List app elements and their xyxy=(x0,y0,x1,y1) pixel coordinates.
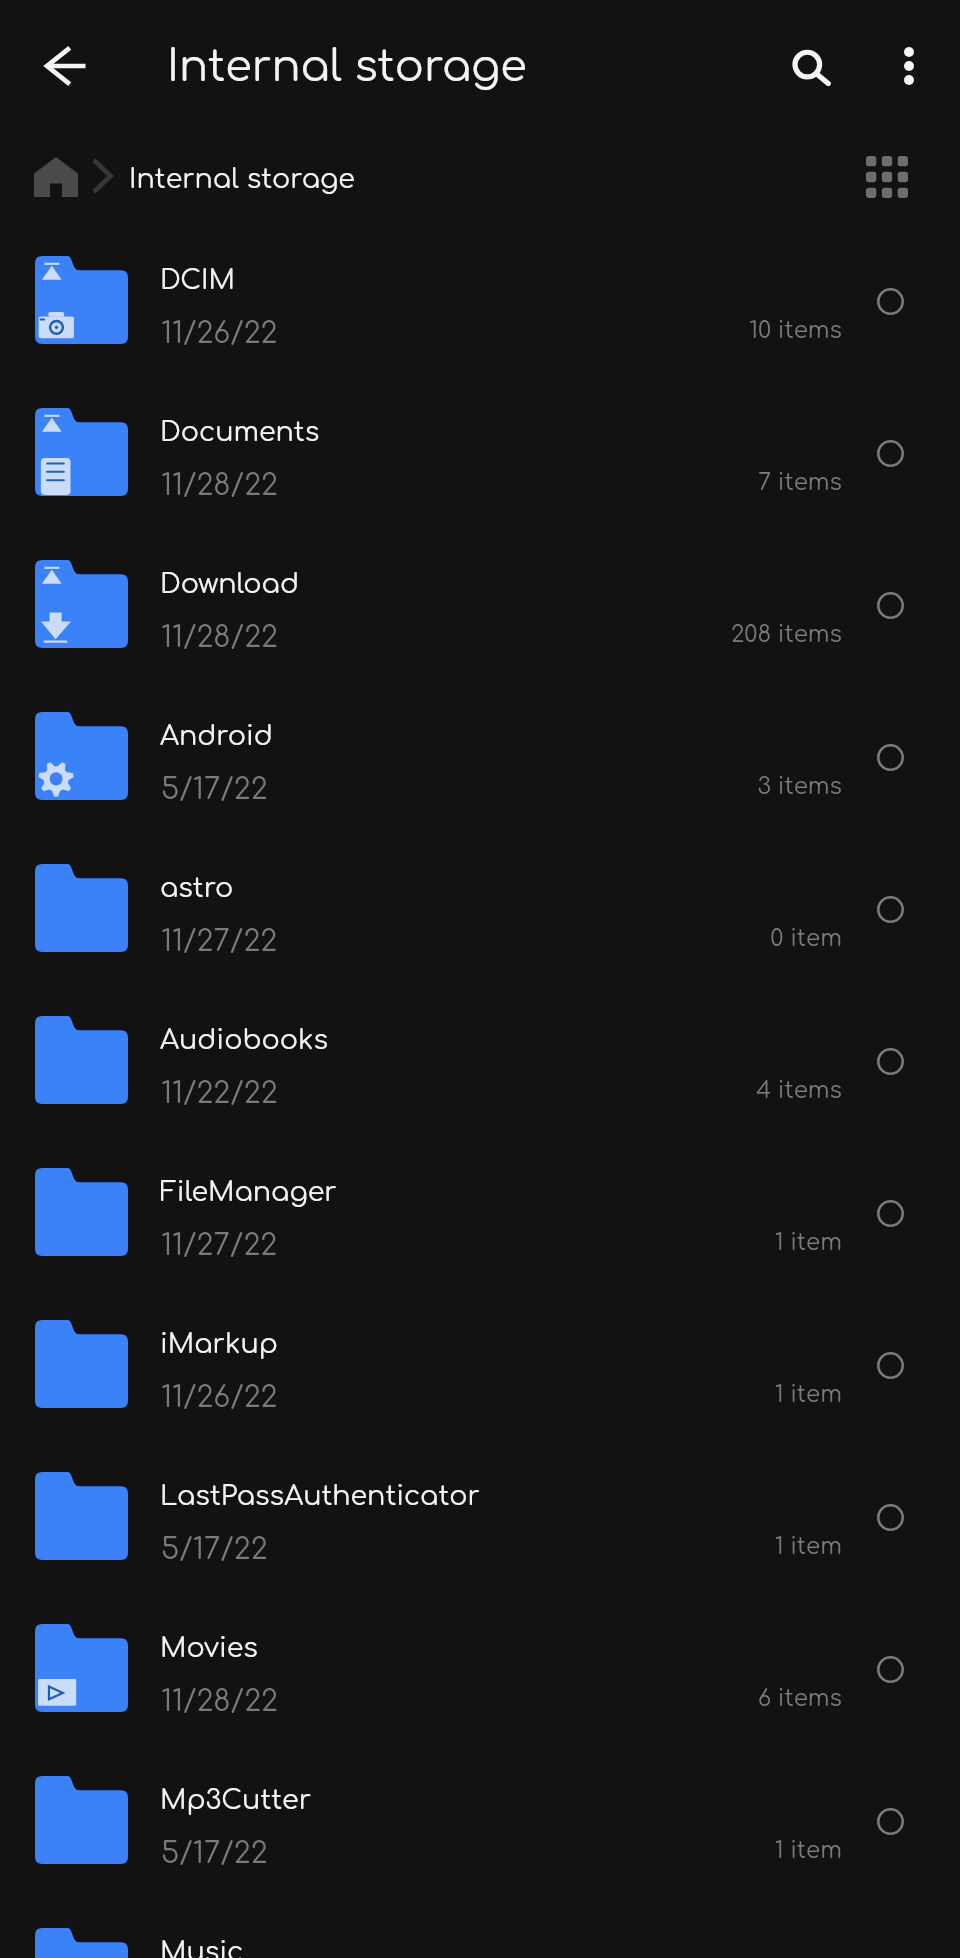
button[interactable]: DCIM xyxy=(0,225,960,377)
button[interactable]: Back xyxy=(22,32,102,100)
staticText: 11/26/22 xyxy=(161,1381,278,1413)
staticText: Audiobooks xyxy=(160,1025,760,1055)
staticText: Mp3Cutter xyxy=(160,1785,760,1815)
staticText: Documents xyxy=(160,417,760,447)
staticText: 11/27/22 xyxy=(161,925,278,957)
button[interactable]: iMarkup xyxy=(0,1289,960,1441)
staticText: Music xyxy=(160,1937,760,1958)
staticText: 5/17/22 xyxy=(161,1533,268,1565)
button[interactable]: Select xyxy=(862,729,918,785)
button[interactable]: Movies xyxy=(0,1593,960,1745)
staticText: Internal storage xyxy=(129,164,355,194)
staticText: 11/27/22 xyxy=(161,1229,278,1261)
button[interactable]: Mp3Cutter xyxy=(0,1745,960,1897)
button[interactable]: Documents xyxy=(0,377,960,529)
staticText: 11/28/22 xyxy=(161,621,278,653)
button[interactable]: Select xyxy=(862,1337,918,1393)
staticText: 11/26/22 xyxy=(161,317,278,349)
staticText: 1 item xyxy=(0,1382,842,1408)
staticText: 0 item xyxy=(0,926,842,952)
button[interactable]: Select xyxy=(862,881,918,937)
staticText: Movies xyxy=(160,1633,760,1663)
staticText: 1 item xyxy=(0,1230,842,1256)
staticText: 3 items xyxy=(0,774,842,800)
staticText: FileManager xyxy=(160,1177,760,1207)
button[interactable]: LastPassAuthenticator xyxy=(0,1441,960,1593)
button[interactable]: Select xyxy=(862,425,918,481)
staticText: Download xyxy=(160,569,760,599)
button[interactable]: FileManager xyxy=(0,1137,960,1289)
button[interactable]: More options xyxy=(871,25,947,107)
staticText: 5/17/22 xyxy=(161,1837,268,1869)
staticText: Android xyxy=(160,721,760,751)
staticText: 4 items xyxy=(0,1078,842,1104)
staticText: 11/28/22 xyxy=(161,1685,278,1717)
staticText: 1 item xyxy=(0,1534,842,1560)
button[interactable]: Select xyxy=(862,1033,918,1089)
staticText: 208 items xyxy=(0,622,842,648)
button[interactable]: Home xyxy=(22,146,90,208)
staticText: 11/28/22 xyxy=(161,469,278,501)
staticText: 6 items xyxy=(0,1686,842,1712)
button[interactable]: Select xyxy=(862,1641,918,1697)
button[interactable]: Search xyxy=(772,25,844,107)
button[interactable]: Music xyxy=(0,1897,960,1958)
staticText: LastPassAuthenticator xyxy=(160,1481,760,1511)
button[interactable]: astro xyxy=(0,833,960,985)
button[interactable]: Select xyxy=(862,1185,918,1241)
button[interactable]: Android xyxy=(0,681,960,833)
button[interactable]: Select xyxy=(862,1489,918,1545)
staticText: 10 items xyxy=(0,318,842,344)
button[interactable]: Select xyxy=(862,577,918,633)
button[interactable]: Select xyxy=(862,273,918,329)
staticText: 1 item xyxy=(0,1838,842,1864)
button[interactable]: Select xyxy=(862,1793,918,1849)
staticText: astro xyxy=(160,873,760,903)
staticText: 5/17/22 xyxy=(161,773,268,805)
button[interactable]: Grid view xyxy=(848,147,926,207)
button[interactable]: Download xyxy=(0,529,960,681)
staticText: DCIM xyxy=(160,265,760,295)
button[interactable]: Audiobooks xyxy=(0,985,960,1137)
staticText: 7 items xyxy=(0,470,842,496)
staticText: Internal storage xyxy=(167,43,527,91)
staticText: iMarkup xyxy=(160,1329,760,1359)
staticText: 11/22/22 xyxy=(161,1077,278,1109)
